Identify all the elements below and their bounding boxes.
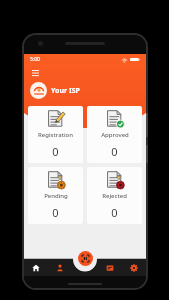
button[interactable]: Open navigation menu xyxy=(29,67,41,79)
button[interactable]: Rejected xyxy=(87,167,142,224)
button[interactable]: Settings xyxy=(122,259,146,276)
button[interactable]: Registration xyxy=(28,106,83,163)
button[interactable]: Your ISP xyxy=(30,82,146,99)
staticText: 0 xyxy=(52,144,59,159)
button[interactable]: Profile xyxy=(48,259,72,276)
staticText: 5:00 xyxy=(30,56,40,63)
button[interactable]: Home xyxy=(24,259,48,276)
button[interactable]: Scan xyxy=(78,251,93,266)
button[interactable]: Payments xyxy=(98,259,122,276)
staticText: 0 xyxy=(111,144,118,159)
button[interactable]: Pending xyxy=(28,167,83,224)
staticText: Pending xyxy=(44,192,68,200)
staticText: Approved xyxy=(101,131,129,139)
button[interactable]: Approved xyxy=(87,106,142,163)
staticText: Your ISP xyxy=(51,86,80,96)
staticText: 0 xyxy=(111,205,118,220)
staticText: Registration xyxy=(38,131,73,139)
staticText: Rejected xyxy=(102,192,127,200)
staticText: 0 xyxy=(52,205,59,220)
